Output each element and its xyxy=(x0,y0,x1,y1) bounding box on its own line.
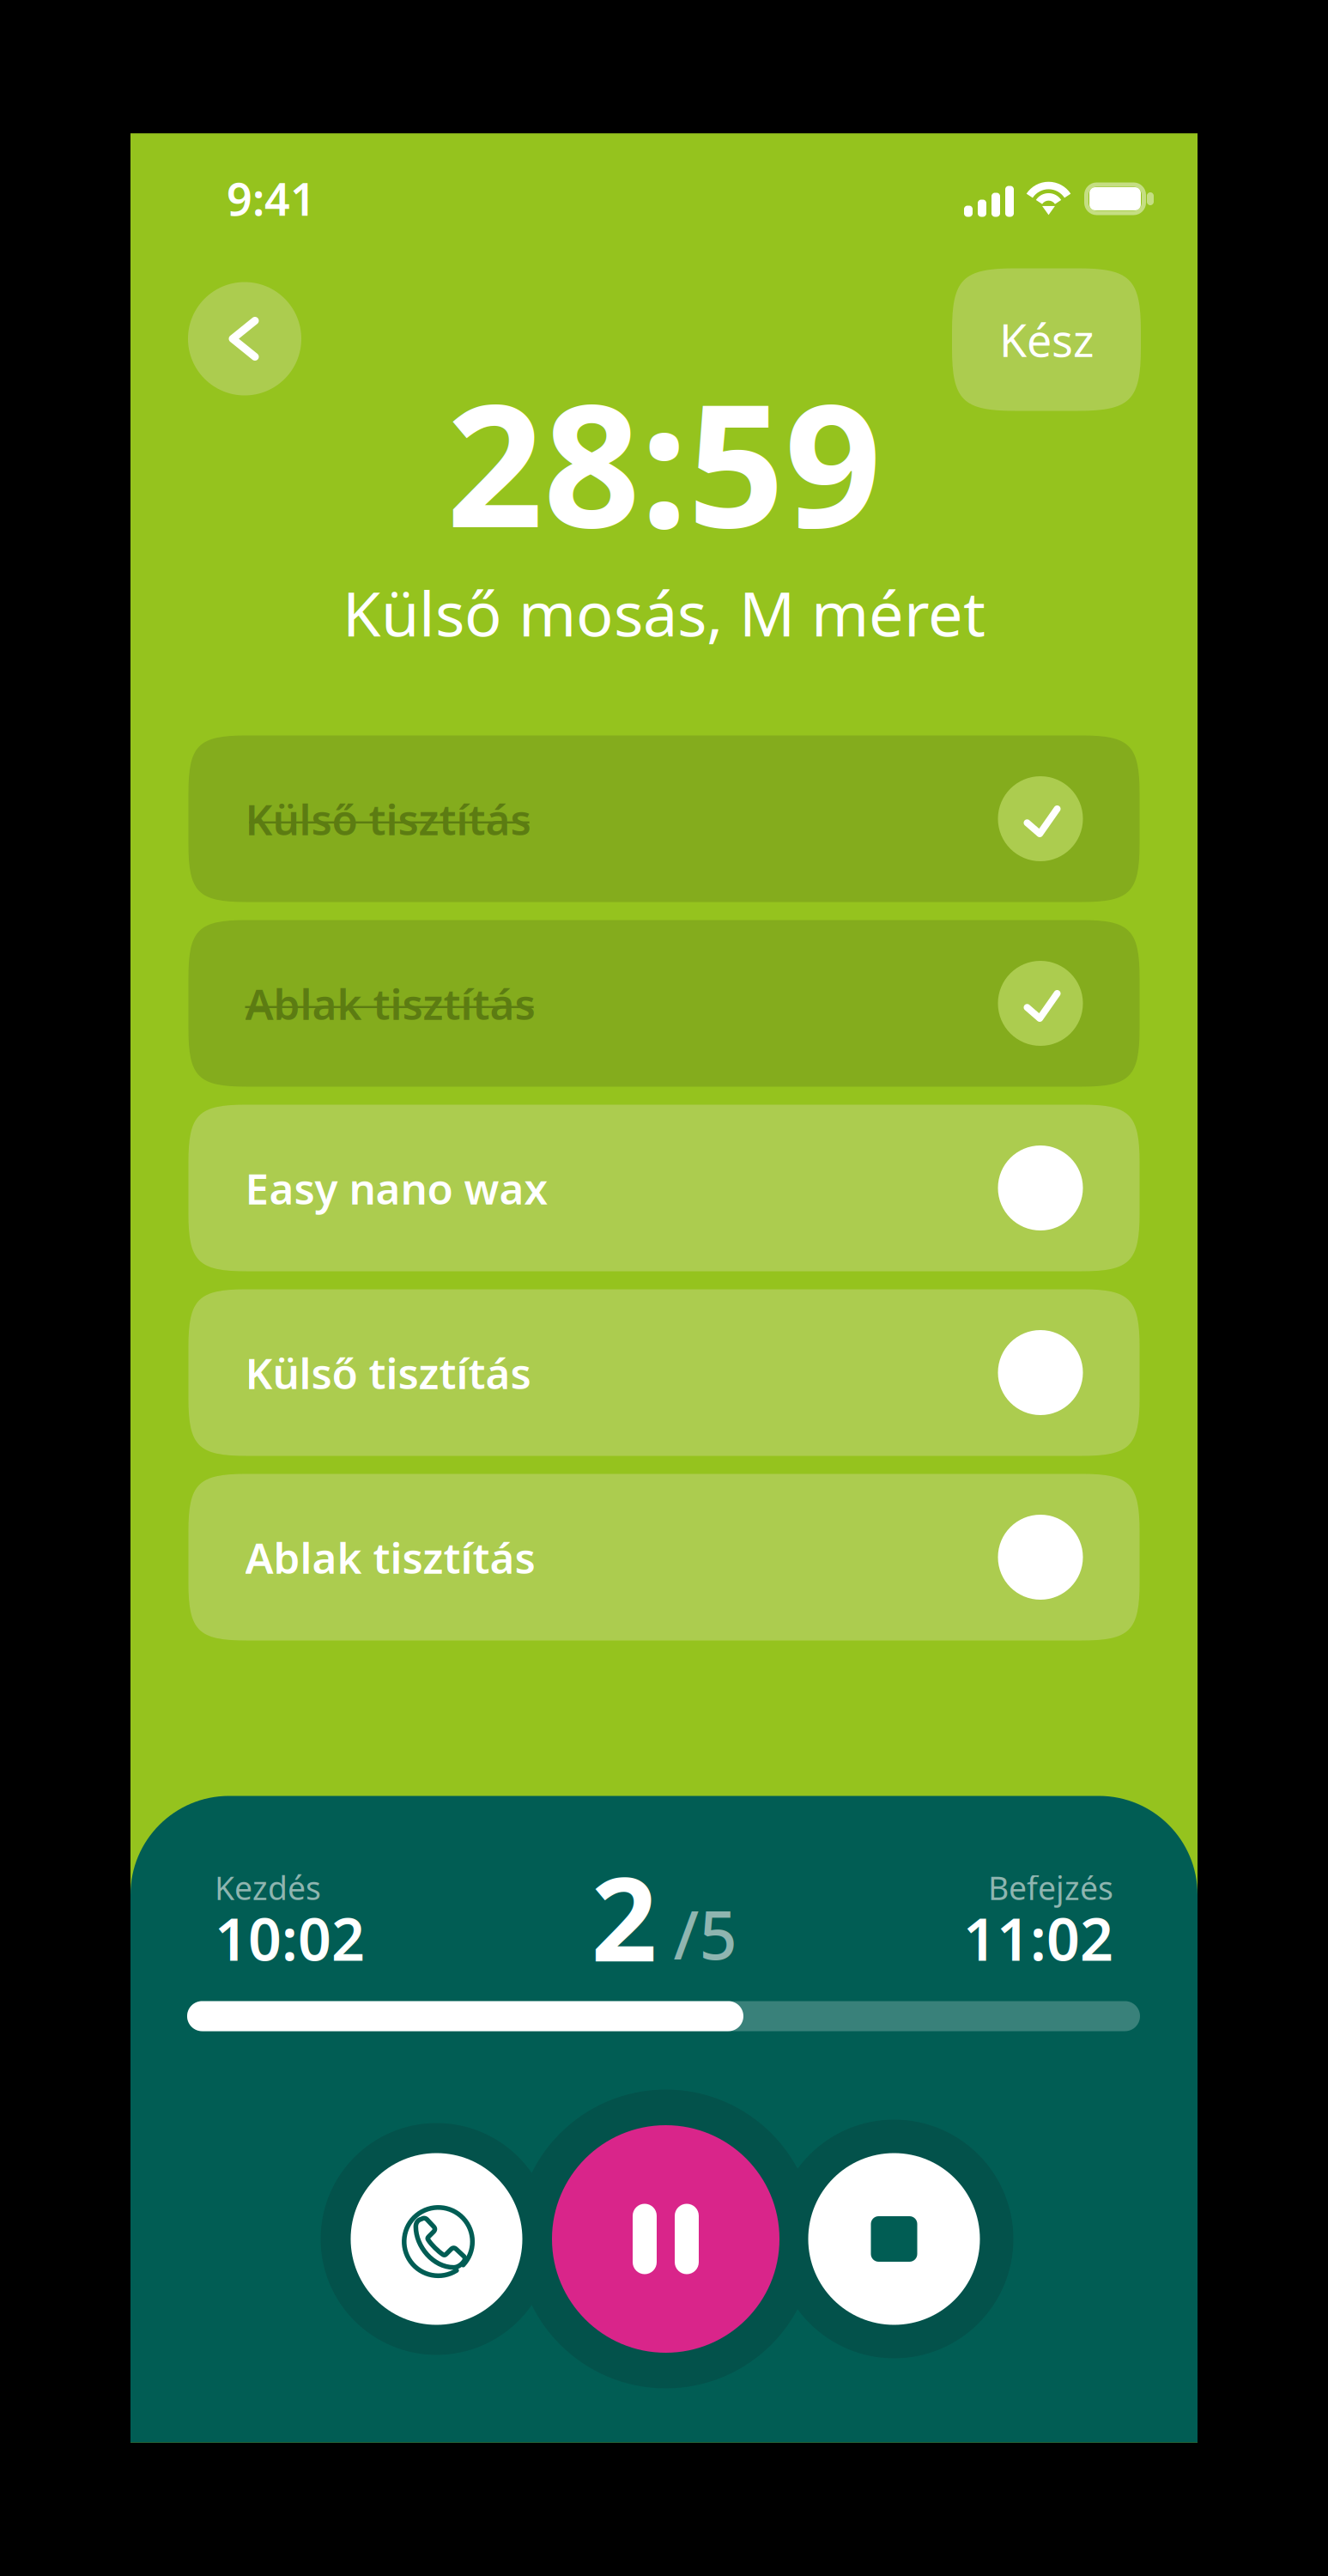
button[interactable]: Kész xyxy=(952,268,1141,411)
staticText: Külső mosás, M méret xyxy=(343,571,985,654)
staticText: Ablak tisztítás xyxy=(245,1529,535,1585)
button[interactable]: Call xyxy=(321,2123,552,2355)
staticText: Külső tisztítás xyxy=(245,791,531,847)
staticText: Külső tisztítás xyxy=(245,1344,531,1401)
staticText: Ablak tisztítás xyxy=(245,975,535,1031)
staticText: Kész xyxy=(999,310,1094,369)
button[interactable]: Back xyxy=(188,282,301,395)
staticText: 28:59 xyxy=(446,349,882,574)
staticText: 9:41 xyxy=(227,169,316,228)
staticText: /5 xyxy=(673,1890,737,1978)
staticText: Kezdés xyxy=(215,1866,321,1909)
button[interactable]: Stop xyxy=(775,2120,1013,2358)
button[interactable]: Ablak tisztítás xyxy=(188,1474,1140,1640)
staticText: 11:02 xyxy=(963,1899,1113,1977)
staticText: Befejzés xyxy=(988,1866,1113,1909)
button[interactable]: Ablak tisztítás xyxy=(188,920,1140,1087)
button[interactable]: Külső tisztítás xyxy=(188,1289,1140,1456)
button[interactable]: Easy nano wax xyxy=(188,1105,1140,1271)
staticText: 2 xyxy=(591,1840,657,1993)
button[interactable]: Külső tisztítás xyxy=(188,735,1140,902)
button[interactable]: Pause xyxy=(516,2090,815,2388)
staticText: Easy nano wax xyxy=(245,1160,548,1216)
staticText: 10:02 xyxy=(215,1899,365,1977)
